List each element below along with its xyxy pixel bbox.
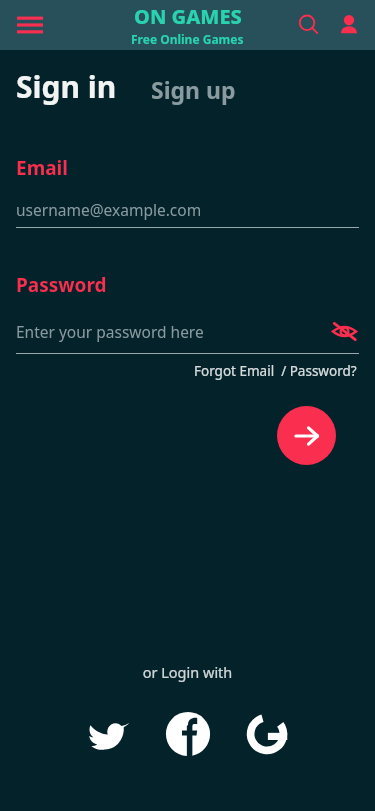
button[interactable]: Sign in with Facebook bbox=[157, 703, 219, 765]
button[interactable]: Account bbox=[329, 5, 369, 45]
button[interactable]: Forgot Email / Password? bbox=[192, 360, 359, 382]
button[interactable]: Sign up bbox=[151, 74, 236, 109]
button[interactable]: Sign in with Twitter bbox=[78, 703, 140, 765]
button[interactable]: Menu bbox=[10, 5, 50, 45]
button[interactable]: Sign in with Google bbox=[236, 703, 298, 765]
staticText: Enter your password here bbox=[16, 321, 329, 342]
staticText: Free Online Games bbox=[131, 31, 244, 47]
button[interactable]: Show password bbox=[329, 316, 359, 346]
button[interactable]: Sign in bbox=[16, 64, 123, 109]
button[interactable]: Search bbox=[289, 5, 329, 45]
staticText: Sign in bbox=[16, 66, 117, 107]
staticText: Forgot Email / Password? bbox=[194, 362, 357, 380]
button[interactable]: Enter your password here bbox=[16, 316, 359, 346]
button[interactable]: Submit bbox=[277, 406, 336, 465]
staticText: or Login with bbox=[0, 662, 375, 682]
staticText: username@example.com bbox=[16, 199, 359, 220]
staticText: Sign up bbox=[151, 74, 236, 105]
button[interactable]: username@example.com bbox=[16, 199, 359, 220]
staticText: ON GAMES bbox=[134, 3, 242, 30]
staticText: Email bbox=[16, 155, 68, 181]
staticText: Password bbox=[16, 272, 107, 298]
